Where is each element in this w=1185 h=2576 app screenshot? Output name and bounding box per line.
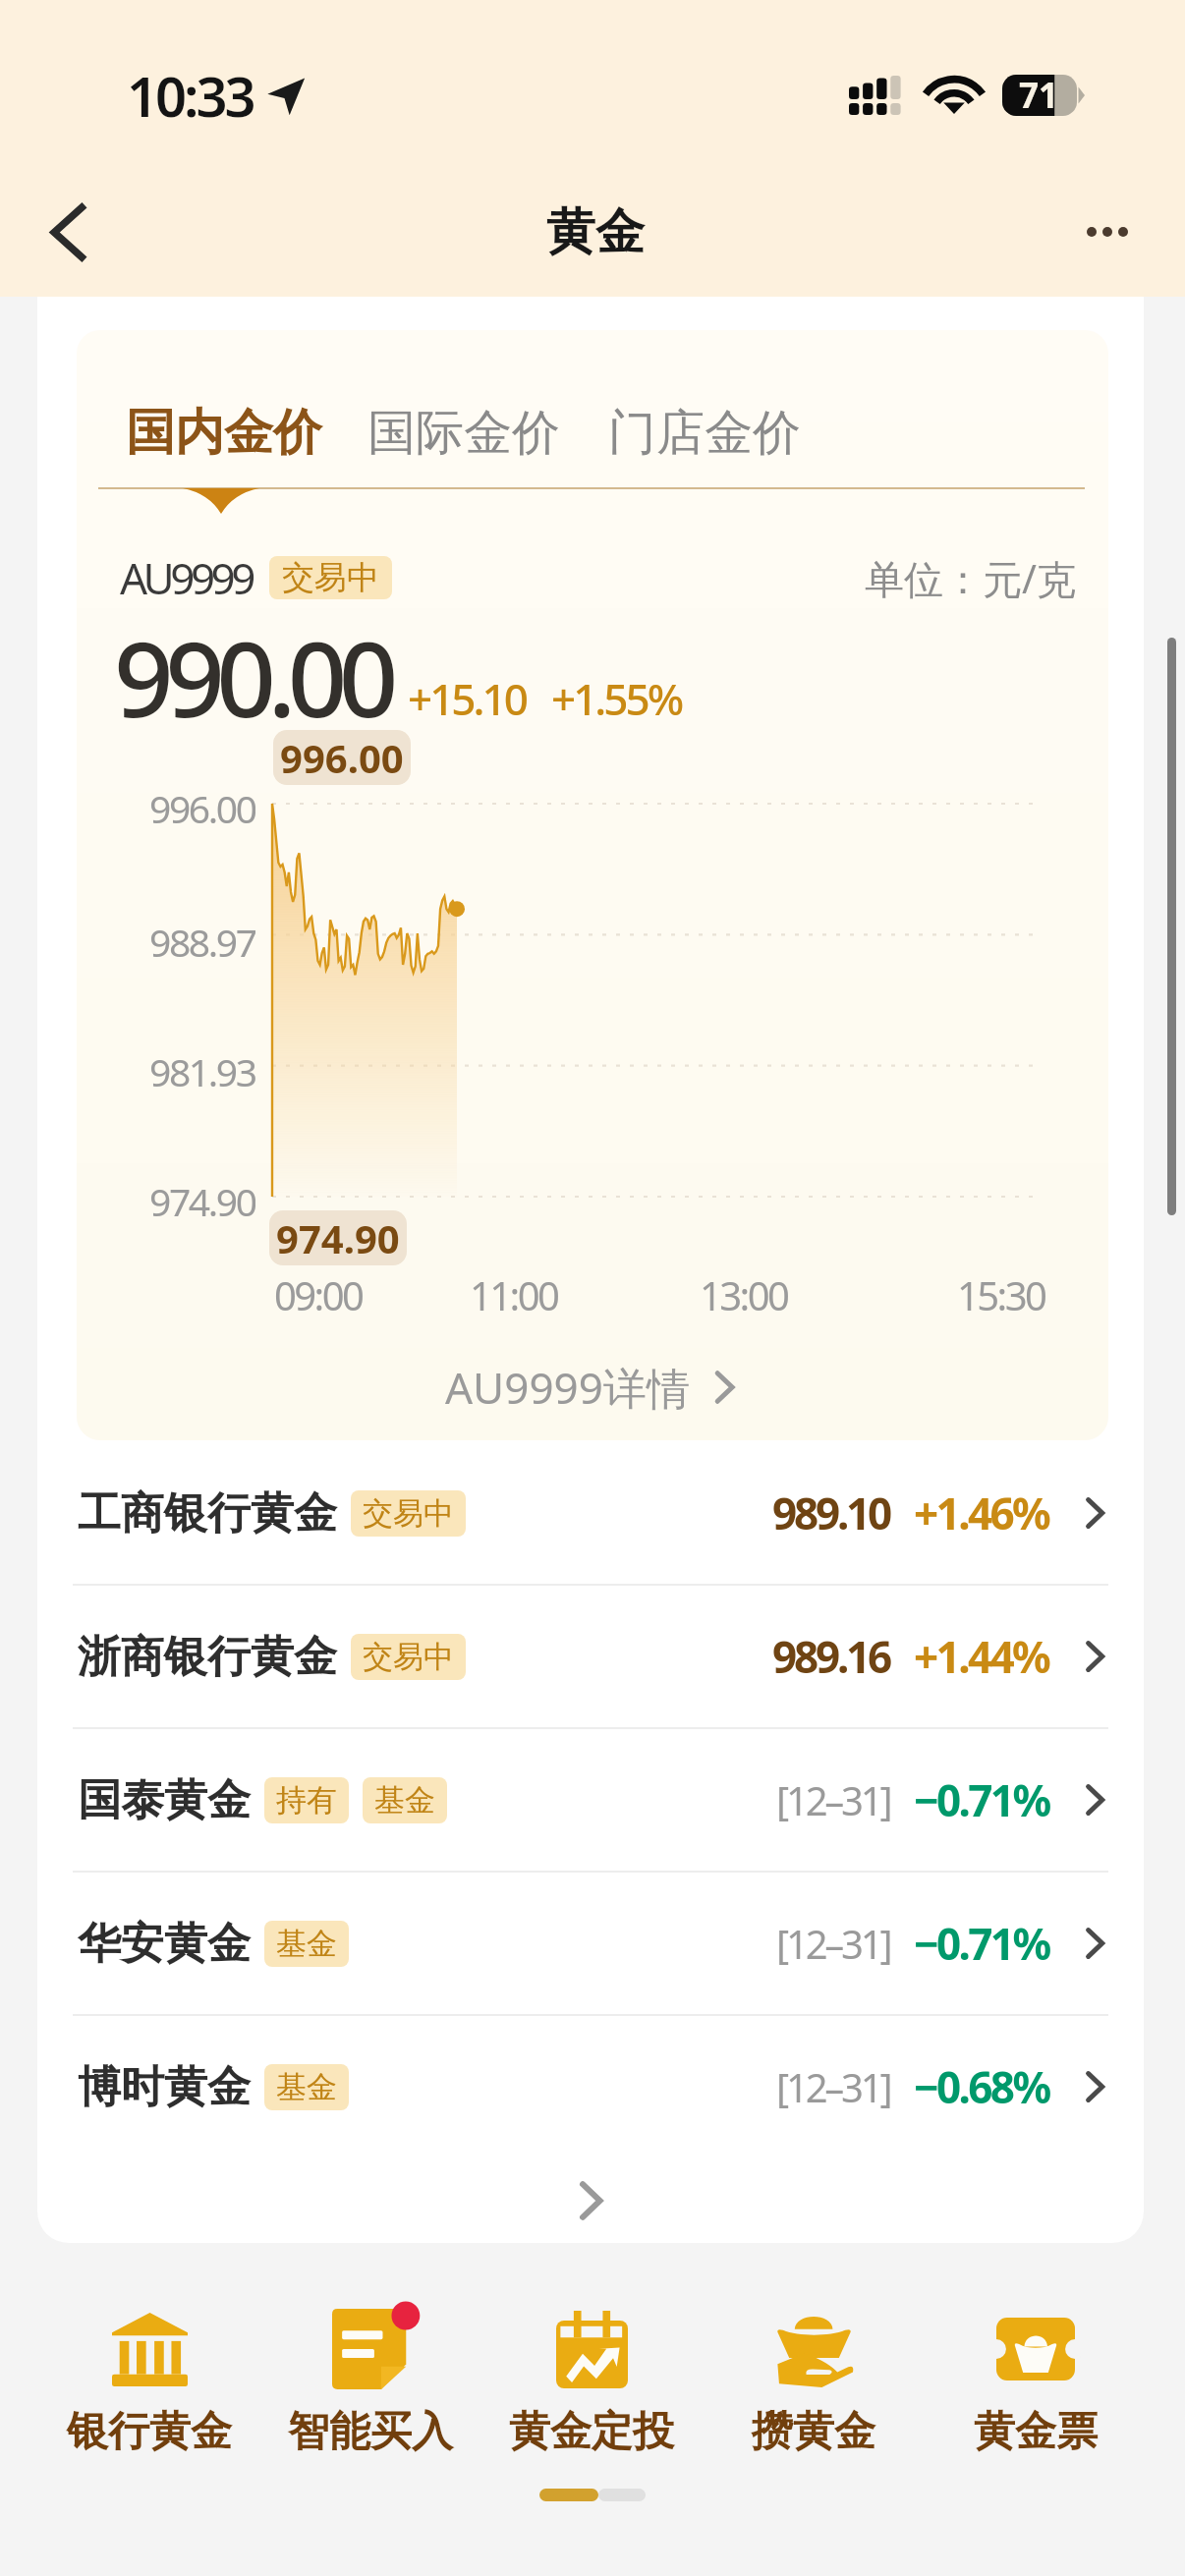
staticText: 华安黄金 [78, 1917, 251, 1971]
staticText: −0.68% [914, 2057, 1049, 2116]
staticText: 浙商银行黄金 [78, 1630, 337, 1684]
button[interactable]: 浙商银行黄金 [37, 1586, 1144, 1727]
staticText: 智能买入 [288, 2406, 453, 2458]
staticText: 989.16 [772, 1627, 890, 1686]
staticText: +1.55% [551, 669, 682, 728]
staticText: 988.97 [149, 916, 255, 967]
staticText: 996.00 [149, 782, 255, 833]
staticText: 工商银行黄金 [78, 1486, 337, 1540]
button[interactable]: 国际金价 [367, 403, 560, 464]
staticText: 990.00 [114, 606, 390, 748]
staticText: AU9999详情 [445, 1358, 690, 1417]
staticText: +1.46% [914, 1484, 1049, 1542]
staticText: 71 [1019, 72, 1059, 119]
staticText: 交易中 [363, 1494, 454, 1533]
button[interactable]: 国泰黄金 [37, 1729, 1144, 1871]
staticText: 交易中 [282, 557, 379, 598]
staticText: 门店金价 [608, 403, 801, 464]
staticText: 13:00 [700, 1268, 788, 1321]
staticText: −0.71% [914, 1914, 1049, 1973]
button[interactable]: Back [0, 167, 134, 297]
staticText: AU9999 [120, 548, 252, 607]
staticText: 黄金定投 [509, 2406, 674, 2458]
staticText: [12–31] [776, 1917, 890, 1970]
staticText: 黄金票 [974, 2406, 1098, 2458]
button[interactable]: AU9999详情 [77, 1348, 1108, 1427]
staticText: 单位：元/克 [865, 551, 1076, 605]
staticText: −0.71% [914, 1770, 1049, 1829]
staticText: 996.00 [280, 731, 404, 784]
staticText: 交易中 [363, 1638, 454, 1676]
staticText: 博时黄金 [78, 2060, 251, 2114]
staticText: 989.10 [772, 1484, 890, 1542]
staticText: 国泰黄金 [78, 1773, 251, 1827]
button[interactable]: More options [1057, 167, 1185, 297]
button[interactable]: 博时黄金 [37, 2016, 1144, 2157]
staticText: 10:33 [127, 58, 254, 133]
staticText: 15:30 [957, 1268, 1045, 1321]
button[interactable]: 门店金价 [608, 403, 801, 464]
staticText: +15.10 [408, 669, 526, 728]
button[interactable]: 银行黄金 [38, 2309, 259, 2458]
staticText: 基金 [276, 2068, 337, 2106]
button[interactable]: 工商银行黄金 [37, 1442, 1144, 1584]
staticText: 攒黄金 [752, 2406, 875, 2458]
staticText: 国内金价 [126, 402, 322, 464]
button[interactable]: 黄金定投 [480, 2309, 703, 2458]
staticText: +1.44% [914, 1627, 1049, 1686]
staticText: 基金 [276, 1925, 337, 1963]
button[interactable]: 华安黄金 [37, 1873, 1144, 2014]
staticText: [12–31] [776, 1773, 890, 1826]
staticText: 银行黄金 [67, 2406, 232, 2458]
button[interactable]: 智能买入 [259, 2309, 480, 2458]
button[interactable]: Expand list [37, 2157, 1144, 2243]
staticText: 11:00 [470, 1268, 558, 1321]
staticText: 09:00 [274, 1268, 363, 1321]
staticText: 974.90 [276, 1211, 400, 1264]
staticText: 基金 [374, 1781, 435, 1820]
button[interactable]: 攒黄金 [703, 2309, 925, 2458]
staticText: 国际金价 [367, 403, 560, 464]
staticText: [12–31] [776, 2060, 890, 2113]
staticText: 974.90 [149, 1175, 255, 1226]
staticText: 981.93 [149, 1045, 255, 1096]
button[interactable]: 黄金票 [925, 2309, 1147, 2458]
staticText: 持有 [276, 1781, 337, 1820]
staticText: 黄金 [546, 201, 645, 263]
button[interactable]: 国内金价 [126, 402, 322, 464]
